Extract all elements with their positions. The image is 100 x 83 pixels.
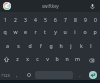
button[interactable]: Shift xyxy=(0,53,12,66)
button[interactable]: h xyxy=(56,38,66,52)
staticText: 2 xyxy=(14,17,17,24)
staticText: q xyxy=(3,28,7,35)
button[interactable]: q xyxy=(0,25,10,38)
button[interactable]: j xyxy=(66,38,76,52)
staticText: h xyxy=(59,42,63,49)
staticText: x xyxy=(26,55,29,62)
button[interactable]: 0 xyxy=(90,15,100,25)
staticText: d xyxy=(28,42,32,49)
button[interactable]: 5 xyxy=(40,15,50,25)
button[interactable]: y xyxy=(50,25,60,38)
staticText: o xyxy=(83,28,87,35)
button[interactable]: ?123 xyxy=(0,68,11,82)
button[interactable]: Gboard settings xyxy=(3,2,11,10)
button[interactable]: p xyxy=(90,25,100,38)
staticText: t xyxy=(44,28,46,35)
staticText: ?123 xyxy=(1,73,10,78)
staticText: 4 xyxy=(34,17,37,24)
staticText: y xyxy=(54,28,57,35)
button[interactable]: d xyxy=(24,38,35,52)
staticText: . xyxy=(79,72,81,79)
staticText: c xyxy=(36,55,39,62)
button[interactable]: 2 xyxy=(10,15,20,25)
button[interactable]: . xyxy=(73,68,86,82)
staticText: e xyxy=(24,28,27,35)
staticText: u xyxy=(63,28,67,35)
button[interactable]: v xyxy=(42,52,52,64)
button[interactable]: 9 xyxy=(80,15,90,25)
staticText: l xyxy=(90,42,92,49)
button[interactable]: r xyxy=(30,25,40,38)
button[interactable]: 3 xyxy=(20,15,30,25)
staticText: 7 xyxy=(64,17,67,24)
button[interactable]: 4 xyxy=(30,15,40,25)
button[interactable]: 7 xyxy=(60,15,70,25)
staticText: 8 xyxy=(74,17,77,24)
staticText: 0 xyxy=(94,17,97,24)
button[interactable]: z xyxy=(12,52,22,64)
staticText: a xyxy=(6,42,9,49)
staticText: r xyxy=(34,28,37,35)
staticText: , xyxy=(16,72,18,79)
button[interactable]: o xyxy=(80,25,90,38)
button[interactable]: 1 xyxy=(0,15,10,25)
staticText: k xyxy=(80,42,83,49)
button[interactable]: Enter xyxy=(89,71,97,79)
button[interactable]: a xyxy=(2,38,13,52)
staticText: w xyxy=(13,28,18,35)
staticText: n xyxy=(65,55,69,62)
button[interactable]: Backspace xyxy=(82,54,100,66)
button[interactable]: u xyxy=(60,25,70,38)
staticText: z xyxy=(16,55,19,62)
button[interactable]: b xyxy=(52,52,62,64)
button[interactable]: t xyxy=(40,25,50,38)
staticText: p xyxy=(93,28,97,35)
button[interactable]: m xyxy=(72,52,82,64)
staticText: s xyxy=(17,42,20,49)
button[interactable]: i xyxy=(70,25,80,38)
button[interactable]: w xyxy=(10,25,20,38)
button[interactable]: s xyxy=(13,38,24,52)
button[interactable]: 8 xyxy=(70,15,80,25)
staticText: i xyxy=(74,28,76,35)
staticText: 9 xyxy=(84,17,87,24)
button[interactable]: e xyxy=(20,25,30,38)
button[interactable]: x xyxy=(22,52,32,64)
button[interactable]: Emoji xyxy=(23,68,35,82)
staticText: 3 xyxy=(24,17,27,24)
staticText: b xyxy=(55,55,59,62)
button[interactable]: c xyxy=(32,52,42,64)
button[interactable]: g xyxy=(46,38,56,52)
staticText: g xyxy=(49,42,53,49)
staticText: swiftkey xyxy=(42,3,59,9)
staticText: 1 xyxy=(4,17,7,24)
staticText: j xyxy=(70,42,72,49)
staticText: f xyxy=(40,42,42,49)
staticText: 6 xyxy=(54,17,57,24)
staticText: m xyxy=(75,55,80,62)
button[interactable]: , xyxy=(11,68,23,82)
button[interactable]: f xyxy=(35,38,46,52)
button[interactable]: k xyxy=(76,38,86,52)
staticText: v xyxy=(46,55,49,62)
staticText: 5 xyxy=(44,17,47,24)
button[interactable]: n xyxy=(62,52,72,64)
button[interactable]: l xyxy=(86,38,96,52)
button[interactable]: 6 xyxy=(50,15,60,25)
button[interactable]: Voice input xyxy=(88,2,96,10)
